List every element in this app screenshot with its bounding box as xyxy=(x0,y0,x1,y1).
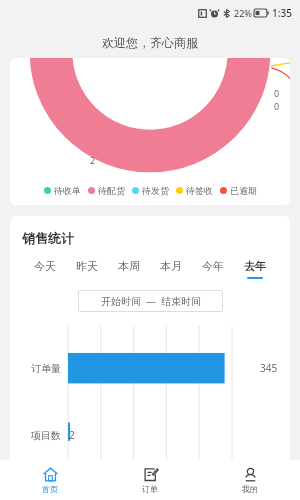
staticText: 订单量 xyxy=(31,362,61,375)
staticText: 今年 xyxy=(202,259,224,273)
button[interactable]: 待收单 xyxy=(44,185,81,196)
button[interactable]: 去年 xyxy=(242,259,268,279)
button[interactable]: 今天 xyxy=(32,259,58,279)
button[interactable]: 待发货 xyxy=(132,185,169,196)
button[interactable]: 待配货 xyxy=(88,185,125,196)
staticText: 本月 xyxy=(160,259,182,273)
staticText: 345 xyxy=(260,361,278,375)
staticText: 待发货 xyxy=(142,185,169,196)
staticText: 欢迎您，齐心商服 xyxy=(102,35,198,50)
staticText: 去年 xyxy=(244,259,266,273)
button[interactable]: 已逾期 xyxy=(220,185,257,196)
button[interactable]: 首页 xyxy=(0,460,100,500)
staticText: 本周 xyxy=(118,259,140,273)
staticText: 销售统计 xyxy=(22,230,74,246)
staticText: 开始时间 xyxy=(101,295,141,308)
staticText: 结束时间 xyxy=(161,295,201,308)
staticText: 待配货 xyxy=(98,185,125,196)
staticText: 22% xyxy=(234,7,252,19)
staticText: 我的 xyxy=(242,484,258,494)
staticText: 项目数 xyxy=(31,429,61,442)
staticText: 订单 xyxy=(142,484,158,494)
button[interactable]: 昨天 xyxy=(74,259,100,279)
staticText: 昨天 xyxy=(76,259,98,273)
button[interactable]: 今年 xyxy=(200,259,226,279)
staticText: 1:35 xyxy=(272,6,292,20)
button[interactable]: 本周 xyxy=(116,259,142,279)
button[interactable]: 订单 xyxy=(100,460,200,500)
staticText: 今天 xyxy=(34,259,56,273)
staticText: 2 xyxy=(90,154,96,166)
staticText: 待签收 xyxy=(186,185,213,196)
staticText: — xyxy=(146,294,156,308)
staticText: 0 xyxy=(274,87,280,99)
staticText: 已逾期 xyxy=(230,185,257,196)
button[interactable]: 本月 xyxy=(158,259,184,279)
button[interactable]: 待签收 xyxy=(176,185,213,196)
staticText: 2 xyxy=(69,428,75,442)
staticText: 首页 xyxy=(42,484,58,494)
staticText: 待收单 xyxy=(54,185,81,196)
button[interactable]: 我的 xyxy=(200,460,300,500)
staticText: 0 xyxy=(274,100,280,112)
button[interactable]: 开始时间 xyxy=(78,290,223,312)
